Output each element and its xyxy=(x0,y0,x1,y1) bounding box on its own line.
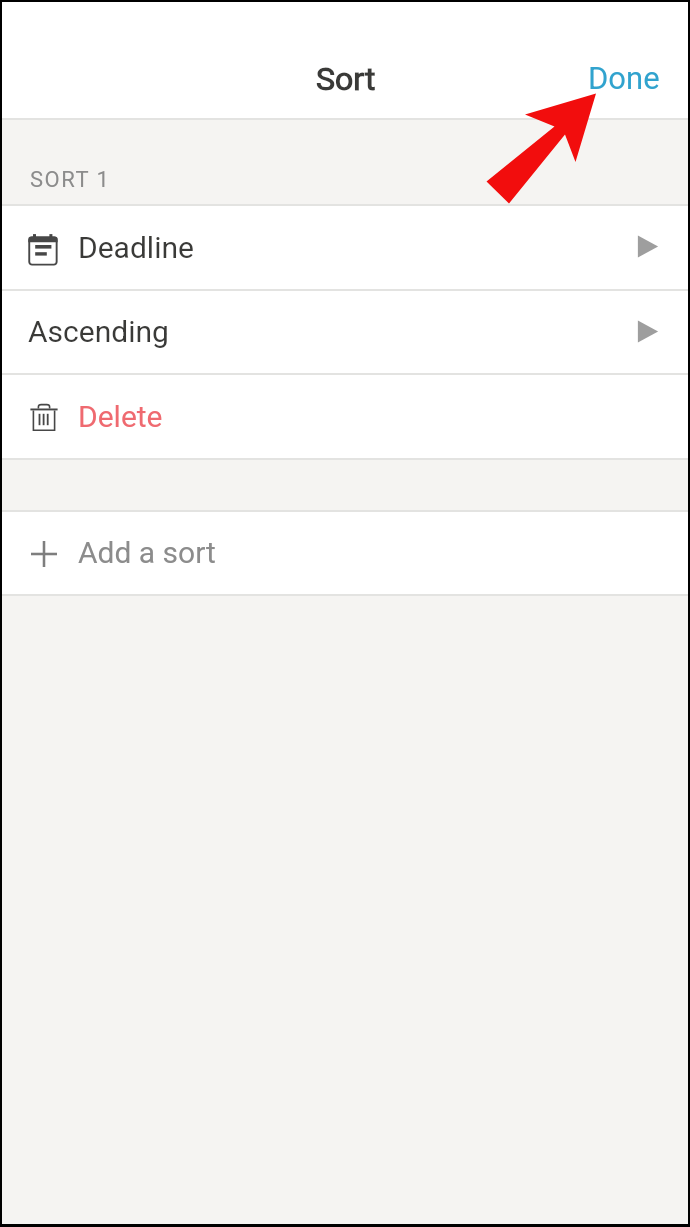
staticText: Delete xyxy=(78,399,163,434)
button[interactable]: Ascending xyxy=(2,291,688,373)
staticText: Sort xyxy=(316,60,376,98)
button[interactable]: Delete xyxy=(2,375,688,458)
staticText: SORT 1 xyxy=(30,167,111,193)
button[interactable]: Add a sort xyxy=(2,512,688,594)
other: Change Ascending xyxy=(637,320,659,343)
staticText: Deadline xyxy=(78,230,194,265)
button[interactable]: Done xyxy=(574,46,674,110)
staticText: Done xyxy=(588,60,660,96)
staticText: Add a sort xyxy=(78,535,216,570)
other: Change Deadline xyxy=(637,235,659,258)
staticText: Ascending xyxy=(28,314,169,349)
button[interactable]: Deadline xyxy=(2,206,688,289)
